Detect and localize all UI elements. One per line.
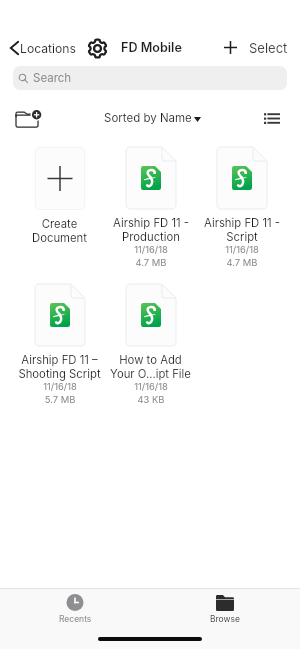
button[interactable]: Select <box>245 36 292 60</box>
staticText: Select <box>249 40 288 56</box>
staticText: 11/16/18 4.7 MB <box>225 244 259 268</box>
button[interactable]: List view <box>264 108 288 128</box>
staticText: Airship FD 11 - Production <box>113 216 189 244</box>
staticText: Recents <box>59 614 92 624</box>
button[interactable]: Airship FD 11 – Shooting Script <box>14 284 105 405</box>
staticText: 11/16/18 5.7 MB <box>43 381 77 405</box>
staticText: 11/16/18 4.7 MB <box>134 244 168 268</box>
button[interactable]: Browse <box>185 594 265 624</box>
staticText: Browse <box>210 614 240 624</box>
staticText: How to Add Your O...ipt File <box>110 353 191 381</box>
staticText: Create Document <box>32 217 87 245</box>
button[interactable]: Settings <box>86 37 109 60</box>
button[interactable]: Sorted by Name <box>101 108 204 128</box>
button[interactable]: Airship FD 11 - Production <box>105 147 196 268</box>
button[interactable]: Search <box>13 66 287 90</box>
staticText: Search <box>33 71 72 85</box>
button[interactable]: Airship FD 11 - Script <box>196 147 287 268</box>
button[interactable]: Add <box>219 36 242 59</box>
button[interactable]: Locations <box>0 36 81 60</box>
staticText: Locations <box>20 41 77 56</box>
staticText: Airship FD 11 - Script <box>204 216 280 244</box>
staticText: 11/16/18 43 KB <box>134 381 168 405</box>
staticText: Sorted by Name <box>104 111 192 125</box>
button[interactable]: New Folder <box>12 106 42 132</box>
button[interactable]: Recents <box>35 594 115 624</box>
staticText: Airship FD 11 – Shooting Script <box>18 353 101 381</box>
button[interactable]: How to Add Your O...ipt File <box>105 284 196 405</box>
staticText: FD Mobile <box>121 40 182 55</box>
button[interactable]: Create Document <box>14 147 105 245</box>
